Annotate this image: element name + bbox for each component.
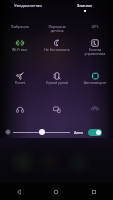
button[interactable]: Не беспокоить bbox=[40, 36, 73, 60]
button[interactable]: Автоповорот bbox=[78, 69, 111, 93]
staticText bbox=[7, 113, 33, 118]
button[interactable]: Передача данных bbox=[40, 13, 73, 37]
button[interactable]: Wi-Fi вкл. bbox=[3, 36, 36, 60]
staticText: Не беспокоить bbox=[44, 47, 70, 52]
button[interactable]: Значки bbox=[56, 0, 113, 15]
staticText: Wi-Fi вкл. bbox=[7, 47, 33, 52]
staticText: Вибрация bbox=[7, 24, 33, 29]
button[interactable]: Back bbox=[0, 183, 37, 200]
staticText: Автоповорот bbox=[82, 80, 108, 85]
button[interactable] bbox=[3, 102, 36, 126]
staticText: GPS bbox=[82, 24, 108, 29]
button[interactable]: Полет bbox=[3, 69, 36, 93]
button[interactable]: Одной рукой bbox=[40, 69, 73, 93]
button[interactable]: GPS bbox=[78, 13, 111, 37]
button[interactable]: Вибрация bbox=[3, 13, 36, 37]
button[interactable]: Уведомления bbox=[0, 0, 56, 15]
button[interactable] bbox=[88, 129, 102, 136]
staticText: Уведомления bbox=[14, 3, 42, 9]
staticText: Передача данных bbox=[44, 24, 70, 33]
button[interactable]: Home bbox=[37, 183, 75, 200]
staticText: Полет bbox=[7, 80, 33, 85]
button[interactable] bbox=[40, 102, 73, 126]
staticText: Значки bbox=[77, 3, 92, 9]
staticText bbox=[82, 113, 108, 118]
staticText: Кнопка управления bbox=[82, 47, 108, 56]
staticText: Авто bbox=[74, 130, 83, 135]
button[interactable]: Recents bbox=[75, 183, 113, 200]
button[interactable]: Кнопка управления bbox=[78, 36, 111, 60]
staticText: Одной рукой bbox=[44, 80, 70, 85]
button[interactable] bbox=[78, 102, 111, 126]
